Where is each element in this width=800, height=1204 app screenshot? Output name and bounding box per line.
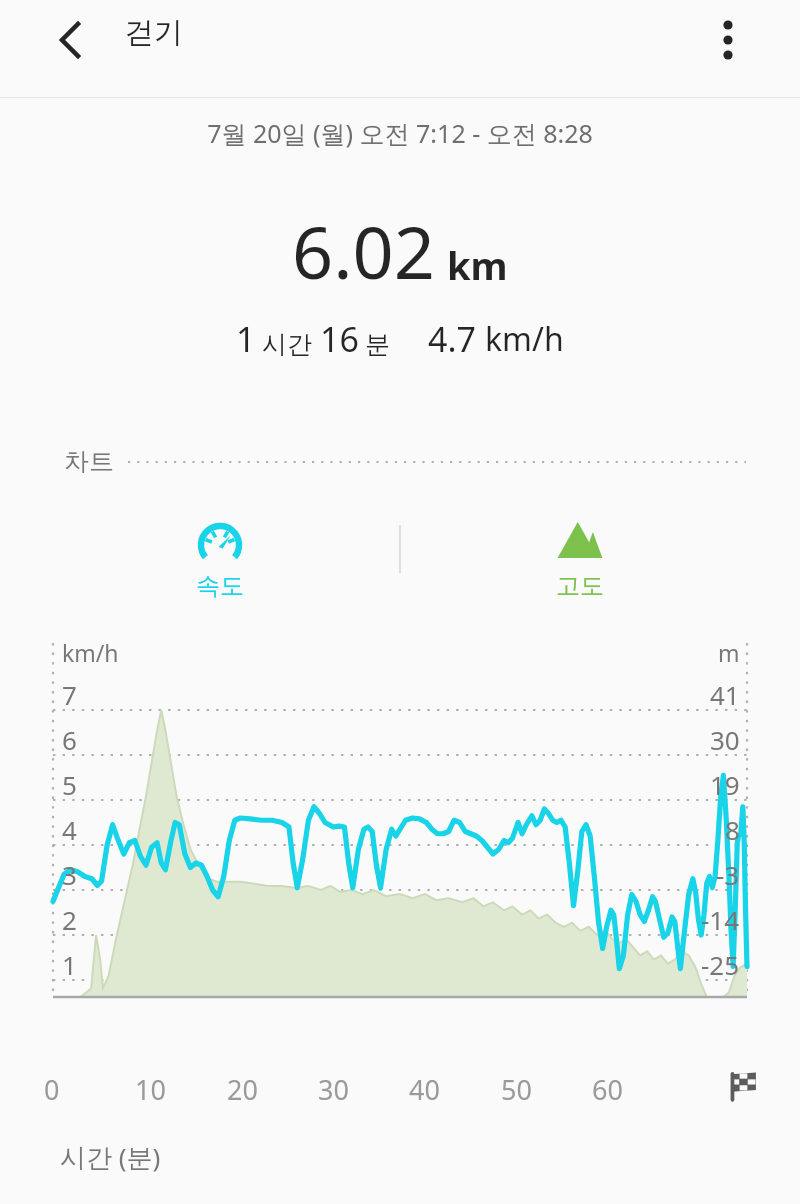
staticText: 41 (710, 677, 740, 712)
staticText: 40 (409, 1071, 440, 1108)
staticText: km (447, 239, 508, 291)
staticText: 4.7 (428, 316, 477, 362)
staticText: -3 (716, 857, 740, 892)
staticText: 7 (62, 677, 77, 712)
staticText: 차트 (64, 446, 114, 477)
staticText: 20 (227, 1071, 258, 1108)
staticText: 0 (44, 1071, 60, 1108)
staticText: -14 (701, 902, 740, 937)
staticText: 분 (365, 329, 390, 360)
staticText: 시간 (262, 329, 312, 360)
staticText: 6.02 (292, 202, 435, 300)
button[interactable]: More options (698, 10, 758, 70)
staticText: 4 (62, 812, 77, 847)
staticText: 1 (236, 316, 256, 362)
staticText: 60 (592, 1071, 623, 1108)
staticText: 6 (62, 722, 77, 757)
staticText: 2 (62, 902, 77, 937)
staticText: km/h (485, 317, 564, 361)
staticText: 5 (62, 767, 77, 802)
button[interactable]: 속도 (160, 515, 280, 601)
staticText: 50 (501, 1071, 532, 1108)
staticText: 8 (725, 812, 740, 847)
staticText: 1 (62, 947, 77, 982)
staticText: 30 (318, 1071, 349, 1108)
staticText: 19 (710, 767, 740, 802)
staticText: 10 (135, 1071, 166, 1108)
staticText: 시간 (분) (60, 1139, 161, 1175)
staticText: 고도 (556, 571, 604, 601)
staticText: 걷기 (125, 14, 183, 51)
staticText: 7월 20일 (월) 오전 7:12 - 오전 8:28 (207, 116, 593, 150)
button[interactable]: Back (40, 10, 100, 70)
staticText: 16 (320, 316, 359, 362)
staticText: 3 (62, 857, 77, 892)
staticText: km/h (62, 637, 119, 668)
staticText: m (718, 637, 740, 668)
staticText: 속도 (196, 571, 244, 601)
button[interactable]: 고도 (520, 515, 640, 601)
staticText: -25 (701, 947, 740, 982)
staticText: 30 (710, 722, 740, 757)
